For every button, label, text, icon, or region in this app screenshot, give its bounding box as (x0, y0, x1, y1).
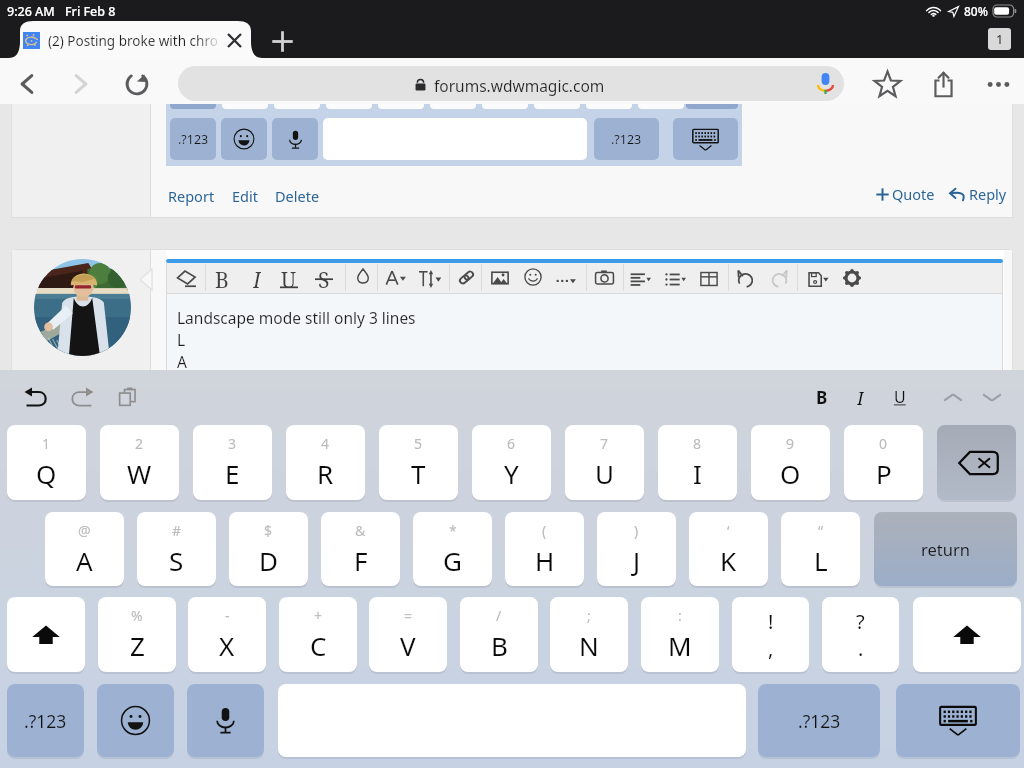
staticText: F (354, 543, 368, 578)
button[interactable]: Previous field (941, 386, 965, 410)
button[interactable]: I (658, 425, 737, 500)
button[interactable]: F (321, 512, 400, 586)
button[interactable]: More options (983, 69, 1014, 100)
button[interactable]: More (555, 271, 577, 293)
button[interactable]: B (212, 266, 232, 288)
button[interactable]: Report (168, 186, 215, 206)
button[interactable]: L (781, 512, 860, 586)
staticText: 9:26 AM (7, 3, 55, 20)
button[interactable]: Shift (7, 597, 85, 672)
button[interactable]: Dictate (187, 684, 264, 757)
button[interactable]: Undo (736, 269, 755, 288)
button[interactable]: M (641, 597, 719, 672)
button[interactable]: C (279, 597, 357, 672)
button[interactable]: Dictate (272, 118, 318, 160)
button[interactable]: Hide keyboard (896, 684, 1020, 757)
button[interactable]: I (247, 266, 267, 288)
button[interactable]: Back (12, 69, 42, 99)
button[interactable]: R (286, 425, 365, 500)
button[interactable]: Forward (66, 69, 96, 99)
button[interactable]: .?123 (170, 118, 216, 160)
button[interactable]: H (505, 512, 584, 586)
staticText: Fri Feb 8 (65, 3, 116, 20)
button[interactable]: return (874, 512, 1017, 586)
button[interactable]: User avatar (34, 259, 131, 356)
button[interactable]: Delete (275, 186, 320, 206)
button[interactable]: Insert emoji (524, 268, 542, 286)
button[interactable]: New tab (270, 29, 295, 54)
button[interactable]: X (188, 597, 266, 672)
button[interactable]: Emoji (97, 684, 174, 757)
button[interactable]: Text colour (355, 268, 371, 284)
button[interactable]: Backspace (937, 425, 1016, 500)
button[interactable]: Shift (913, 597, 1021, 672)
button[interactable]: Settings (843, 269, 861, 287)
button[interactable]: Redo (69, 385, 94, 410)
button[interactable]: S (314, 266, 334, 288)
button[interactable]: Table (700, 270, 718, 288)
button[interactable]: Align (630, 269, 651, 290)
button[interactable]: A (45, 512, 124, 586)
button[interactable]: Y (472, 425, 551, 500)
button[interactable]: Bookmark (872, 69, 903, 100)
button[interactable]: D (229, 512, 308, 586)
button[interactable]: S (137, 512, 216, 586)
button[interactable]: ? . (822, 597, 899, 672)
button[interactable]: U (279, 266, 299, 288)
button[interactable]: Reply (949, 184, 1007, 204)
button[interactable]: .?123 (594, 118, 659, 160)
button[interactable]: 1 (988, 28, 1011, 50)
staticText: return (921, 538, 970, 560)
button[interactable]: J (597, 512, 676, 586)
button[interactable]: Numbers (7, 684, 84, 757)
button[interactable]: V (369, 597, 447, 672)
staticText: K (720, 543, 737, 578)
button[interactable]: T (379, 425, 458, 500)
button[interactable]: E (193, 425, 272, 500)
button[interactable]: U (565, 425, 644, 500)
button[interactable] (9, 21, 262, 58)
staticText: Reply (969, 184, 1007, 204)
button[interactable]: Underline (889, 386, 910, 407)
button[interactable]: Quote (876, 184, 935, 204)
button[interactable]: Draft (808, 269, 829, 290)
button[interactable]: Insert link (458, 269, 475, 286)
button[interactable]: K (689, 512, 768, 586)
button[interactable]: Camera (595, 268, 614, 287)
button[interactable]: Eraser (177, 268, 196, 287)
staticText: “ (818, 521, 824, 540)
button[interactable]: N (550, 597, 628, 672)
button[interactable]: Paste (117, 386, 139, 408)
button[interactable]: Numbers (758, 684, 880, 757)
button[interactable]: Q (7, 425, 86, 500)
button[interactable]: P (844, 425, 923, 500)
button[interactable]: Close tab (225, 31, 244, 50)
button[interactable]: Redo (770, 269, 789, 288)
button[interactable]: Italic (850, 386, 871, 407)
button[interactable]: Reload (122, 69, 152, 99)
button[interactable]: Emoji (221, 118, 267, 160)
button[interactable]: Font size (418, 267, 442, 291)
button[interactable]: Bold (811, 386, 832, 407)
button[interactable]: Undo (24, 385, 49, 410)
button[interactable]: ! , (732, 597, 809, 672)
button[interactable]: Share (928, 69, 959, 100)
staticText: L (177, 329, 186, 350)
button[interactable] (178, 66, 844, 101)
button[interactable]: List (665, 269, 686, 290)
button[interactable]: Edit (232, 186, 258, 206)
button[interactable]: B (460, 597, 538, 672)
staticText: Q (36, 456, 57, 491)
button[interactable]: Z (98, 597, 176, 672)
button[interactable]: Font (385, 267, 407, 289)
staticText: # (172, 521, 182, 540)
button[interactable]: G (413, 512, 492, 586)
button[interactable]: O (751, 425, 830, 500)
button[interactable]: Insert image (491, 269, 509, 287)
button[interactable]: Hide keyboard (673, 118, 738, 160)
button[interactable]: W (100, 425, 179, 500)
staticText: - (225, 606, 230, 625)
button[interactable]: Next field (980, 386, 1004, 410)
